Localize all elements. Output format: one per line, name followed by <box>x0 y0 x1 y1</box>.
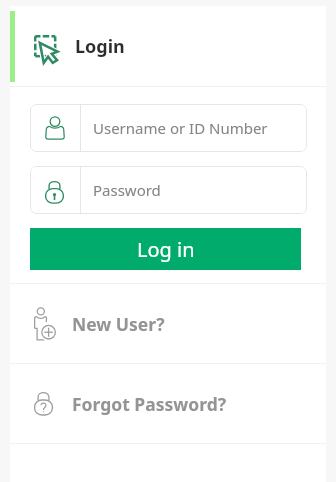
staticText: Forgot Password? <box>72 392 227 416</box>
staticText: Password <box>93 180 161 200</box>
button[interactable]: New User? <box>10 284 326 363</box>
staticText: Username or ID Number <box>93 118 268 138</box>
button[interactable]: Log in <box>30 228 301 270</box>
button[interactable]: Username or ID Number <box>30 104 307 152</box>
staticText: New User? <box>72 312 165 336</box>
staticText: Log in <box>137 236 195 263</box>
button[interactable]: Password <box>30 166 307 214</box>
button[interactable]: Login <box>10 6 326 86</box>
button[interactable]: Forgot Password? <box>10 364 326 443</box>
staticText: Login <box>75 34 125 59</box>
